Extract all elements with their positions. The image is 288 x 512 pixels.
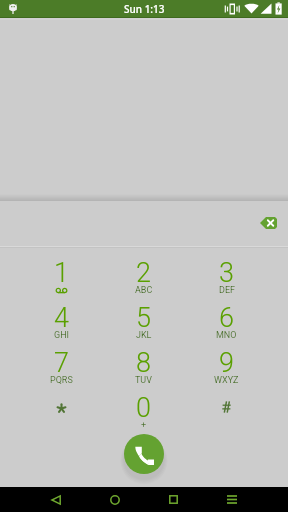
button[interactable]: 5: [102, 296, 185, 341]
staticText: 6: [219, 302, 234, 334]
button[interactable]: Home: [101, 487, 129, 512]
staticText: MNO: [216, 330, 237, 341]
staticText: 9: [219, 347, 234, 379]
staticText: DEF: [219, 285, 235, 296]
staticText: 4: [54, 302, 69, 334]
staticText: +: [141, 420, 147, 431]
button[interactable]: 1: [20, 251, 102, 296]
staticText: 0: [136, 392, 151, 424]
button[interactable]: 6: [185, 296, 268, 341]
button[interactable]: [185, 386, 268, 431]
staticText: 8: [136, 347, 151, 379]
button[interactable]: 4: [20, 296, 102, 341]
staticText: TUV: [135, 375, 152, 386]
staticText: 5: [136, 302, 151, 334]
button[interactable]: Back: [42, 487, 70, 512]
button[interactable]: Menu: [218, 487, 246, 512]
button[interactable]: Backspace: [250, 205, 286, 241]
button[interactable]: 8: [102, 341, 185, 386]
button[interactable]: 9: [185, 341, 268, 386]
staticText: 2: [136, 257, 151, 289]
button[interactable]: Call: [124, 434, 164, 474]
button[interactable]: Recents: [159, 487, 187, 512]
button[interactable]: 2: [102, 251, 185, 296]
button[interactable]: 7: [20, 341, 102, 386]
button[interactable]: [20, 386, 102, 431]
button[interactable]: 3: [185, 251, 268, 296]
staticText: PQRS: [50, 375, 73, 386]
staticText: 1: [54, 257, 69, 289]
button[interactable]: 0: [102, 386, 185, 431]
staticText: JKL: [136, 330, 152, 341]
staticText: ABC: [135, 285, 153, 296]
staticText: Sun 1:13: [124, 2, 165, 16]
staticText: 7: [54, 347, 69, 379]
staticText: WXYZ: [214, 375, 239, 386]
staticText: GHI: [54, 330, 69, 341]
staticText: 3: [219, 257, 234, 289]
